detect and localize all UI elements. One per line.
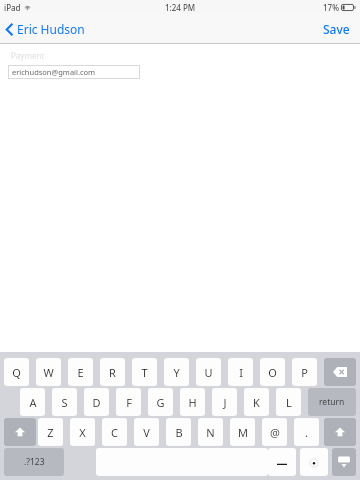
staticText: S [61, 395, 68, 410]
button[interactable]: D [84, 388, 109, 416]
button[interactable]: Eric Hudson [0, 17, 93, 41]
staticText: B [175, 425, 183, 440]
button[interactable]: N [198, 418, 223, 446]
button[interactable]: Underscore [268, 448, 296, 476]
staticText: 1:24 PM [165, 2, 196, 13]
button[interactable]: .?123 [4, 448, 64, 476]
button[interactable]: A [20, 388, 45, 416]
staticText: E [77, 365, 84, 380]
button[interactable]: O [260, 358, 285, 386]
staticText: L [286, 395, 292, 410]
button[interactable]: erichudson@gmail.com [8, 65, 140, 79]
button[interactable]: J [212, 388, 237, 416]
staticText: F [126, 395, 132, 410]
button[interactable]: B [166, 418, 191, 446]
button[interactable]: . [294, 418, 319, 446]
staticText: D [92, 395, 101, 410]
staticText: O [268, 365, 277, 380]
staticText: G [156, 395, 165, 410]
button[interactable]: W [36, 358, 61, 386]
staticText: T [141, 365, 148, 380]
button[interactable]: Shift [4, 418, 36, 446]
staticText: X [79, 425, 86, 440]
staticText: U [204, 365, 213, 380]
staticText: H [188, 395, 197, 410]
staticText: Payment [11, 50, 45, 61]
staticText: W [43, 365, 54, 380]
staticText: P [301, 365, 308, 380]
staticText: Z [47, 425, 54, 440]
staticText: M [238, 425, 248, 440]
button[interactable]: R [100, 358, 125, 386]
button[interactable]: X [70, 418, 95, 446]
button[interactable]: U [196, 358, 221, 386]
button[interactable]: I [228, 358, 253, 386]
staticText: A [29, 395, 37, 410]
button[interactable]: Hide keyboard [332, 448, 356, 476]
staticText: . [305, 425, 308, 440]
staticText: N [206, 425, 215, 440]
button[interactable]: Period [300, 448, 328, 476]
staticText: @ [270, 425, 280, 440]
button[interactable]: Backspace [324, 358, 356, 386]
button[interactable]: G [148, 388, 173, 416]
button[interactable]: V [134, 418, 159, 446]
staticText: I [239, 365, 243, 380]
staticText: 17% [323, 2, 339, 13]
staticText: Eric Hudson [17, 21, 85, 37]
staticText: R [109, 365, 116, 380]
staticText: K [253, 395, 260, 410]
staticText: C [111, 425, 118, 440]
button[interactable]: F [116, 388, 141, 416]
staticText: J [223, 395, 227, 410]
staticText: iPad [4, 2, 21, 13]
staticText: .?123 [24, 456, 45, 468]
button[interactable]: Z [38, 418, 63, 446]
staticText: Q [12, 365, 21, 380]
button[interactable]: C [102, 418, 127, 446]
staticText: Save [323, 21, 350, 37]
button[interactable]: @ [262, 418, 287, 446]
button[interactable]: S [52, 388, 77, 416]
staticText: V [143, 425, 150, 440]
button[interactable]: return [308, 388, 356, 416]
button[interactable]: Q [4, 358, 29, 386]
button[interactable]: E [68, 358, 93, 386]
button[interactable]: L [276, 388, 301, 416]
button[interactable]: Y [164, 358, 189, 386]
staticText: Y [173, 365, 180, 380]
staticText: erichudson@gmail.com [12, 67, 96, 77]
button[interactable]: H [180, 388, 205, 416]
button[interactable]: Save [313, 16, 360, 42]
button[interactable]: K [244, 388, 269, 416]
button[interactable]: Shift [324, 418, 356, 446]
button[interactable]: M [230, 418, 255, 446]
staticText: return [319, 396, 345, 408]
button[interactable]: P [292, 358, 317, 386]
button[interactable]: T [132, 358, 157, 386]
